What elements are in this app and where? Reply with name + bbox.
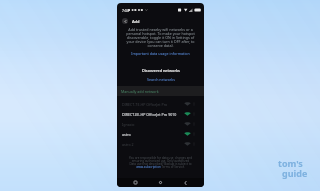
staticText: 7:04 <box>122 8 129 13</box>
button[interactable]: Back <box>122 18 128 24</box>
staticText: Manually add network <box>121 89 159 94</box>
button[interactable]: Ignacio <box>117 119 204 129</box>
staticText: DIRECT-EE-HP OfficeJet Pro 9010 <box>122 112 177 117</box>
staticText: astro 2 <box>122 142 134 147</box>
button[interactable]: Back <box>181 178 190 187</box>
staticText: Discovered networks <box>142 68 180 73</box>
button[interactable]: Important data usage information <box>131 51 190 56</box>
staticText: You are responsible for data use, charge… <box>129 156 192 160</box>
button[interactable]: astro 2 <box>117 139 204 149</box>
staticText: Add trusted nearby wifi networks or a pe… <box>125 27 196 48</box>
button[interactable]: Recent apps <box>131 178 140 187</box>
staticText: Search networks <box>147 77 175 82</box>
button[interactable]: Manually add network <box>117 86 204 96</box>
button[interactable]: www.subscription Terms of Service. <box>136 165 185 169</box>
staticText: tom's <box>278 157 303 169</box>
staticText: Ignacio <box>122 122 135 127</box>
staticText: Add <box>132 19 140 24</box>
staticText: guide <box>282 167 308 179</box>
button[interactable]: Home <box>156 178 165 187</box>
staticText: ensuring authorized use. Only authorized… <box>126 159 195 163</box>
button[interactable]: astro <box>117 129 204 139</box>
button[interactable]: DIRECT-EE-HP OfficeJet Pro 9010 <box>117 109 204 119</box>
button[interactable]: DIRECT-7E-HP OfficeJet Pro <box>117 99 204 109</box>
button[interactable]: Search networks <box>147 77 175 82</box>
staticText: DIRECT-7E-HP OfficeJet Pro <box>122 102 168 107</box>
staticText: Important data usage information <box>131 51 190 56</box>
staticText: astro <box>122 132 131 137</box>
staticText: Data use that described? Backup is subje… <box>129 162 192 166</box>
